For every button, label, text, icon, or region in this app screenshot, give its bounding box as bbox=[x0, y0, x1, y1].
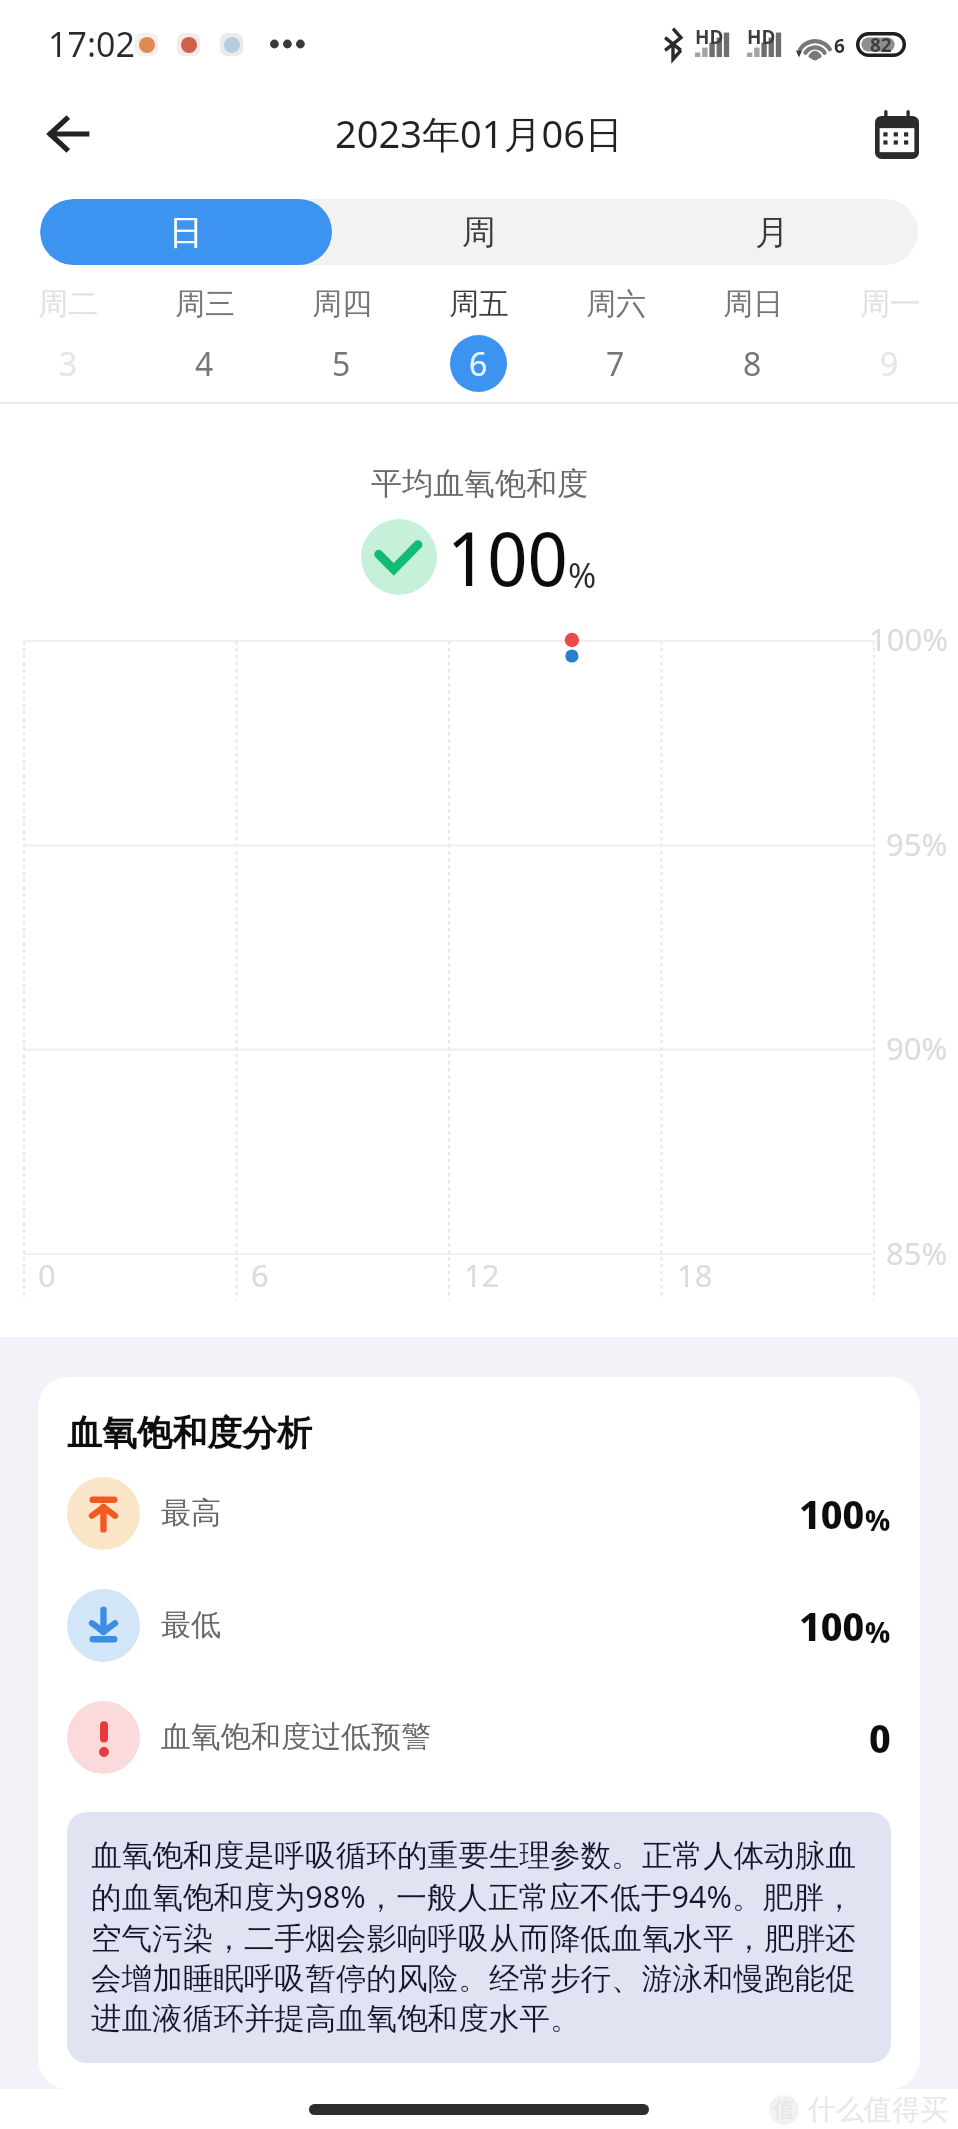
staticText: 82 bbox=[870, 32, 892, 57]
staticText: 0 bbox=[38, 1254, 56, 1296]
staticText: 6 bbox=[251, 1254, 269, 1296]
staticText: 最高 bbox=[161, 1494, 221, 1532]
staticText: 周 bbox=[462, 211, 496, 254]
button[interactable]: 周三 bbox=[136, 265, 273, 402]
staticText: 6 bbox=[469, 342, 488, 386]
staticText: HD bbox=[747, 24, 776, 50]
staticText: 5 bbox=[332, 342, 351, 386]
staticText: 95% bbox=[886, 823, 948, 865]
staticText: 平均血氧饱和度 bbox=[371, 464, 588, 503]
staticText: 100 bbox=[447, 506, 568, 608]
button[interactable]: 月 bbox=[625, 199, 918, 265]
staticText: 18 bbox=[677, 1254, 713, 1296]
button[interactable]: 周 bbox=[332, 199, 625, 265]
staticText: 血氧饱和度分析 bbox=[67, 1411, 312, 1455]
staticText: 100% bbox=[869, 618, 948, 660]
staticText: 周五 bbox=[449, 285, 509, 323]
staticText: 日 bbox=[169, 211, 203, 254]
staticText: % bbox=[568, 552, 597, 598]
staticText: 2023年01月06日 bbox=[335, 107, 623, 159]
staticText: 3 bbox=[59, 342, 78, 386]
button[interactable]: 周二 bbox=[0, 265, 136, 402]
button[interactable]: 周一 bbox=[821, 265, 958, 402]
staticText: 月 bbox=[755, 211, 789, 254]
staticText: 0 bbox=[869, 1710, 891, 1764]
staticText: 周四 bbox=[312, 285, 372, 323]
staticText: 周六 bbox=[586, 285, 646, 323]
staticText: 17:02 bbox=[48, 21, 135, 67]
staticText: % bbox=[865, 1612, 891, 1651]
staticText: 7 bbox=[606, 342, 625, 386]
staticText: 8 bbox=[743, 342, 762, 386]
staticText: 周日 bbox=[723, 285, 783, 323]
button[interactable]: 周日 bbox=[684, 265, 821, 402]
staticText: 6 bbox=[834, 33, 845, 59]
staticText: 100 bbox=[799, 1486, 865, 1540]
staticText: HD bbox=[695, 24, 724, 50]
staticText: 值 bbox=[773, 2096, 795, 2124]
staticText: 9 bbox=[880, 342, 899, 386]
staticText: 什么值得买 bbox=[808, 2092, 948, 2127]
staticText: 4 bbox=[195, 342, 214, 386]
staticText: 100 bbox=[799, 1598, 865, 1652]
button[interactable]: Calendar bbox=[861, 98, 933, 170]
staticText: % bbox=[865, 1500, 891, 1539]
staticText: 85% bbox=[886, 1232, 948, 1274]
button[interactable]: Back bbox=[32, 98, 104, 170]
button[interactable]: 周六 bbox=[547, 265, 684, 402]
staticText: 12 bbox=[464, 1254, 500, 1296]
button[interactable]: 最低 bbox=[67, 1569, 891, 1681]
button[interactable]: 日 bbox=[40, 199, 332, 265]
staticText: 血氧饱和度过低预警 bbox=[161, 1718, 431, 1756]
staticText: 周二 bbox=[38, 285, 98, 323]
staticText: 血氧饱和度是呼吸循环的重要生理参数。正常人体动脉血的血氧饱和度为98%，一般人正… bbox=[91, 1837, 867, 2038]
staticText: 90% bbox=[886, 1027, 948, 1069]
button[interactable]: 最高 bbox=[67, 1457, 891, 1569]
button[interactable]: 血氧饱和度过低预警 bbox=[67, 1681, 891, 1793]
button[interactable]: 周五 bbox=[410, 265, 547, 402]
staticText: 周一 bbox=[860, 285, 920, 323]
button[interactable]: 周四 bbox=[273, 265, 410, 402]
staticText: 最低 bbox=[161, 1606, 221, 1644]
staticText: 周三 bbox=[175, 285, 235, 323]
